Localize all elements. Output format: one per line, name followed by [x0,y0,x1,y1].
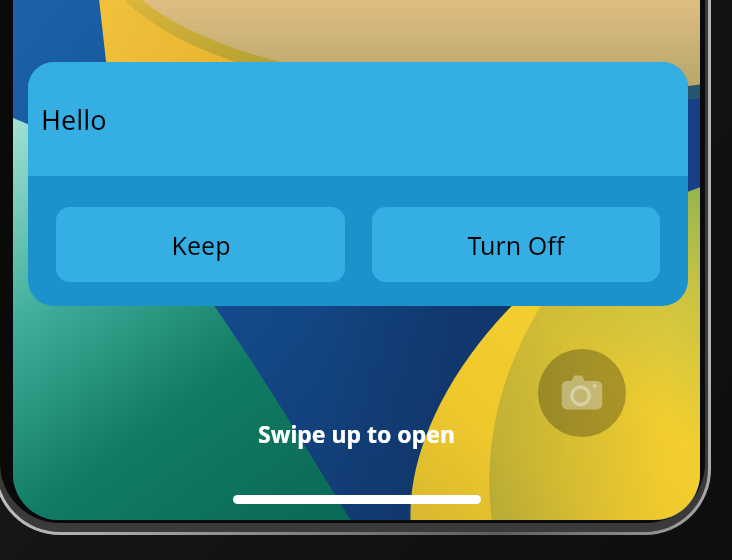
button[interactable]: Keep [56,207,345,282]
button[interactable]: Turn Off [372,207,660,282]
button[interactable]: Camera [538,349,626,437]
staticText: Turn Off [467,228,565,262]
staticText: Keep [171,228,231,262]
staticText: Hello [41,101,107,138]
staticText: Swipe up to open [258,418,455,449]
